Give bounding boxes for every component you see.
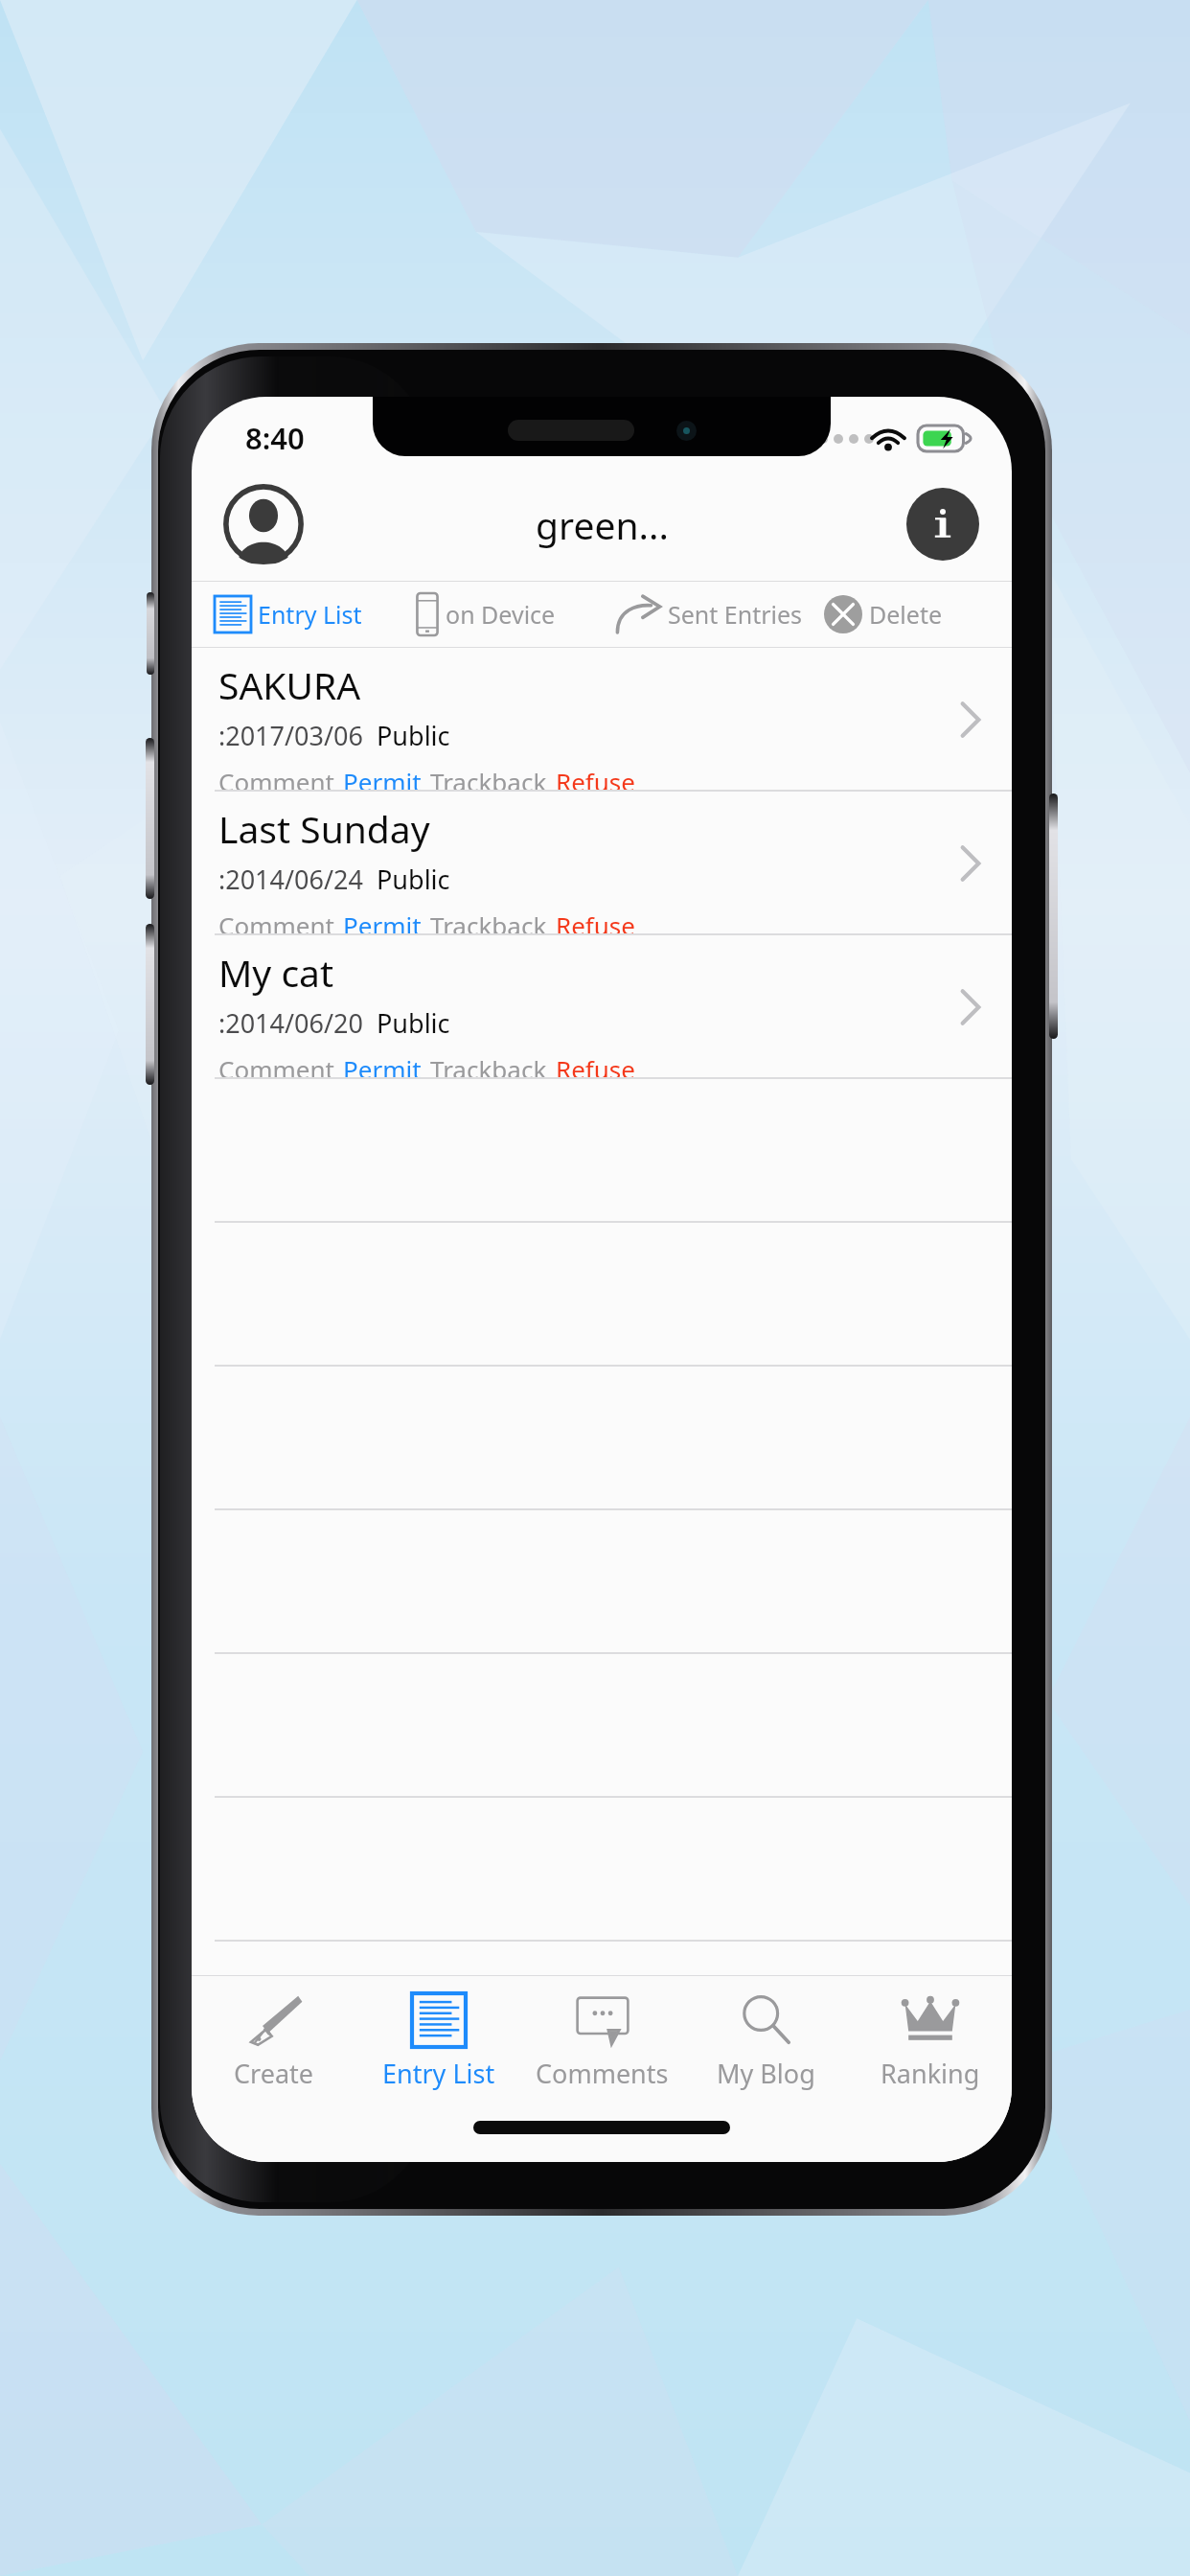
button[interactable]: Information bbox=[906, 488, 979, 561]
button[interactable]: Sent Entries bbox=[602, 582, 807, 647]
staticText: green... bbox=[536, 499, 669, 550]
staticText: :2017/03/06 bbox=[218, 718, 363, 753]
staticText: Refuse bbox=[556, 908, 635, 935]
staticText: Public bbox=[377, 1005, 450, 1041]
button[interactable]: Create bbox=[192, 1976, 356, 2104]
staticText: :2014/06/24 bbox=[218, 862, 363, 897]
staticText: Comment bbox=[218, 1052, 334, 1079]
staticText: :2014/06/20 bbox=[218, 1005, 363, 1041]
staticText: Delete bbox=[869, 598, 943, 631]
staticText: My cat bbox=[218, 947, 334, 998]
button[interactable]: Ranking bbox=[848, 1976, 1012, 2104]
staticText: Entry List bbox=[382, 2056, 495, 2091]
button[interactable]: Delete bbox=[807, 582, 1012, 647]
staticText: Comment bbox=[218, 765, 334, 792]
staticText: on Device bbox=[446, 598, 556, 631]
button[interactable]: on Device bbox=[397, 582, 602, 647]
button[interactable]: Profile bbox=[222, 483, 305, 565]
staticText: Permit bbox=[343, 908, 422, 935]
staticText: Sent Entries bbox=[668, 598, 803, 631]
staticText: Entry List bbox=[258, 598, 362, 631]
button[interactable]: My cat bbox=[192, 935, 1012, 1079]
staticText: Ranking bbox=[881, 2056, 980, 2091]
staticText: 8:40 bbox=[245, 418, 305, 458]
staticText: Trackback bbox=[430, 908, 547, 935]
staticText: Create bbox=[234, 2056, 314, 2091]
staticText: Last Sunday bbox=[218, 803, 430, 854]
staticText: Refuse bbox=[556, 1052, 635, 1079]
staticText: Comment bbox=[218, 908, 334, 935]
staticText: My Blog bbox=[717, 2056, 815, 2091]
staticText: Trackback bbox=[430, 765, 547, 792]
staticText: Comments bbox=[536, 2056, 669, 2091]
button[interactable]: My Blog bbox=[684, 1976, 848, 2104]
staticText: SAKURA bbox=[218, 659, 361, 710]
button[interactable]: Entry List bbox=[356, 1976, 520, 2104]
button[interactable]: Entry List bbox=[192, 582, 397, 647]
staticText: Refuse bbox=[556, 765, 635, 792]
staticText: Public bbox=[377, 718, 450, 753]
staticText: Permit bbox=[343, 1052, 422, 1079]
staticText: Permit bbox=[343, 765, 422, 792]
button[interactable]: SAKURA bbox=[192, 648, 1012, 792]
button[interactable]: Comments bbox=[520, 1976, 684, 2104]
staticText: Trackback bbox=[430, 1052, 547, 1079]
button[interactable]: Last Sunday bbox=[192, 792, 1012, 935]
staticText: Public bbox=[377, 862, 450, 897]
